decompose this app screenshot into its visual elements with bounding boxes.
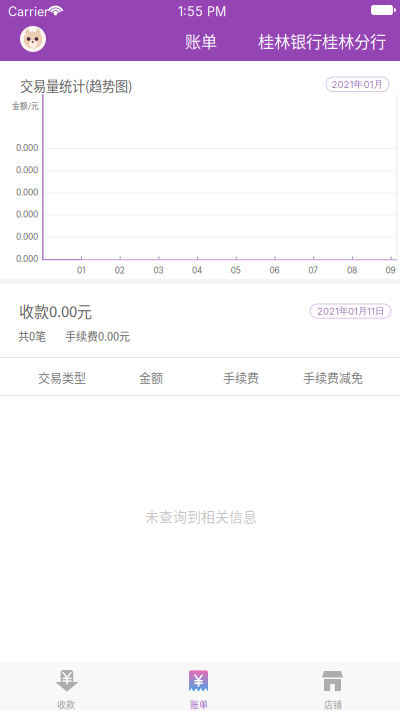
staticText: 手续费 bbox=[223, 369, 259, 386]
staticText: 2021年01月 bbox=[331, 78, 383, 90]
staticText: 交易类型 bbox=[38, 369, 86, 386]
staticText: 07 bbox=[308, 265, 318, 275]
staticText: 0.000 bbox=[16, 254, 38, 264]
staticText: 手续费0.00元 bbox=[65, 328, 130, 344]
staticText: 03 bbox=[153, 265, 163, 275]
staticText: 1:55 PM bbox=[178, 4, 226, 19]
staticText: 2021年01月11日 bbox=[317, 305, 384, 317]
staticText: 账单 bbox=[190, 698, 208, 711]
staticText: 收款0.00元 bbox=[19, 300, 92, 322]
staticText: 手续费减免 bbox=[303, 369, 363, 386]
staticText: 0.000 bbox=[16, 165, 38, 175]
button[interactable]: 2021年01月 bbox=[326, 77, 389, 92]
staticText: 0.000 bbox=[16, 232, 38, 242]
staticText: 未查询到相关信息 bbox=[145, 506, 257, 526]
staticText: 04 bbox=[192, 265, 202, 275]
staticText: 共0笔 bbox=[18, 328, 46, 344]
staticText: 02 bbox=[115, 265, 125, 275]
staticText: 0.000 bbox=[16, 210, 38, 220]
button[interactable]: 收款 bbox=[0, 663, 133, 711]
staticText: 桂林银行桂林分行 bbox=[258, 29, 386, 53]
staticText: 金额/元 bbox=[12, 100, 39, 111]
staticText: 05 bbox=[231, 265, 241, 275]
staticText: 08 bbox=[347, 265, 357, 275]
staticText: 交易量统计(趋势图) bbox=[20, 76, 132, 95]
button[interactable]: Profile bbox=[20, 26, 46, 52]
staticText: 收款 bbox=[57, 698, 75, 711]
staticText: 09 bbox=[386, 265, 396, 275]
button[interactable]: 店铺 bbox=[267, 663, 400, 711]
staticText: 0.000 bbox=[16, 187, 38, 197]
staticText: 01 bbox=[77, 265, 85, 275]
staticText: Carrier bbox=[8, 4, 49, 19]
button[interactable]: 账单 bbox=[133, 663, 267, 711]
staticText: 金额 bbox=[139, 369, 163, 386]
staticText: 0.000 bbox=[16, 143, 38, 153]
button[interactable]: 2021年01月11日 bbox=[310, 304, 391, 318]
staticText: 06 bbox=[269, 265, 279, 275]
staticText: 账单 bbox=[185, 29, 217, 52]
staticText: 店铺 bbox=[324, 698, 342, 711]
